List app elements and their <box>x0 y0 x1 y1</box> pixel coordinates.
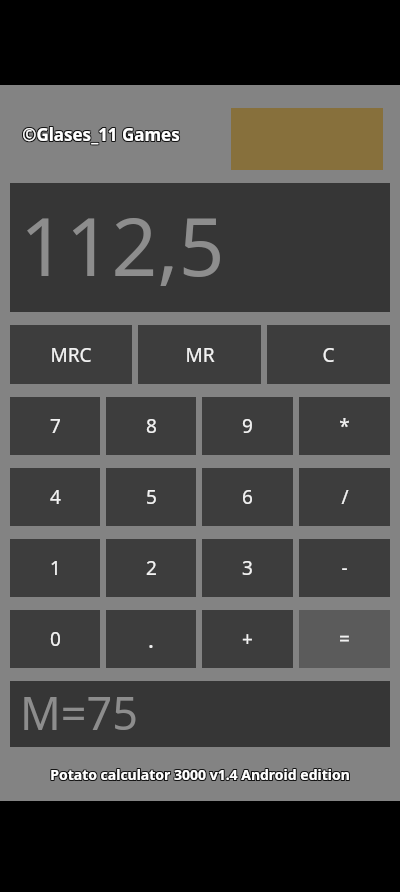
staticText: 7 <box>50 413 61 439</box>
staticText: 8 <box>146 413 157 439</box>
staticText: . <box>148 624 154 654</box>
button[interactable]: MR <box>138 325 261 384</box>
staticText: ©Glases_11 Games <box>23 124 181 147</box>
button[interactable]: - <box>299 539 390 597</box>
staticText: 5 <box>146 484 157 510</box>
button[interactable]: . <box>106 610 196 668</box>
button[interactable]: 9 <box>202 397 293 455</box>
staticText: Potato calculator 3000 v1.4 Android edit… <box>49 766 349 785</box>
staticText: 0 <box>50 626 61 652</box>
staticText: 6 <box>242 484 253 510</box>
button[interactable]: MRC <box>10 325 132 384</box>
staticText: ©Glases_11 Games <box>22 123 180 146</box>
button[interactable]: 8 <box>106 397 196 455</box>
staticText: 1 <box>50 555 61 581</box>
staticText: 112,5 <box>20 190 225 299</box>
button[interactable]: 6 <box>202 468 293 526</box>
staticText: Potato calculator 3000 v1.4 Android edit… <box>51 764 351 783</box>
staticText: Potato calculator 3000 v1.4 Android edit… <box>49 765 349 784</box>
staticText: - <box>341 555 348 581</box>
staticText: = <box>339 626 350 652</box>
button[interactable]: 3 <box>202 539 293 597</box>
staticText: ©Glases_11 Games <box>22 122 180 145</box>
button[interactable]: 0 <box>10 610 100 668</box>
button[interactable]: 4 <box>10 468 100 526</box>
staticText: Potato calculator 3000 v1.4 Android edit… <box>51 766 351 785</box>
staticText: Potato calculator 3000 v1.4 Android edit… <box>51 765 351 784</box>
staticText: 9 <box>242 413 253 439</box>
staticText: * <box>339 413 350 439</box>
staticText: ©Glases_11 Games <box>23 123 181 146</box>
button[interactable]: 1 <box>10 539 100 597</box>
staticText: 3 <box>242 555 253 581</box>
staticText: MR <box>185 342 215 368</box>
button[interactable]: + <box>202 610 293 668</box>
staticText: Potato calculator 3000 v1.4 Android edit… <box>50 765 350 784</box>
staticText: ©Glases_11 Games <box>21 124 179 147</box>
staticText: ©Glases_11 Games <box>23 122 181 145</box>
staticText: 2 <box>146 555 157 581</box>
staticText: + <box>242 626 253 652</box>
staticText: Potato calculator 3000 v1.4 Android edit… <box>49 764 349 783</box>
staticText: Potato calculator 3000 v1.4 Android edit… <box>50 764 350 783</box>
button[interactable]: = <box>299 610 390 668</box>
button[interactable]: 7 <box>10 397 100 455</box>
staticText: Potato calculator 3000 v1.4 Android edit… <box>50 766 350 785</box>
staticText: C <box>322 342 335 368</box>
staticText: M=75 <box>20 682 139 743</box>
button[interactable]: / <box>299 468 390 526</box>
button[interactable]: C <box>267 325 390 384</box>
button[interactable]: 2 <box>106 539 196 597</box>
staticText: / <box>341 484 349 510</box>
staticText: 4 <box>50 484 61 510</box>
staticText: ©Glases_11 Games <box>22 124 180 147</box>
staticText: MRC <box>50 342 92 368</box>
staticText: ©Glases_11 Games <box>21 123 179 146</box>
staticText: ©Glases_11 Games <box>21 122 179 145</box>
button[interactable]: * <box>299 397 390 455</box>
button[interactable]: 5 <box>106 468 196 526</box>
